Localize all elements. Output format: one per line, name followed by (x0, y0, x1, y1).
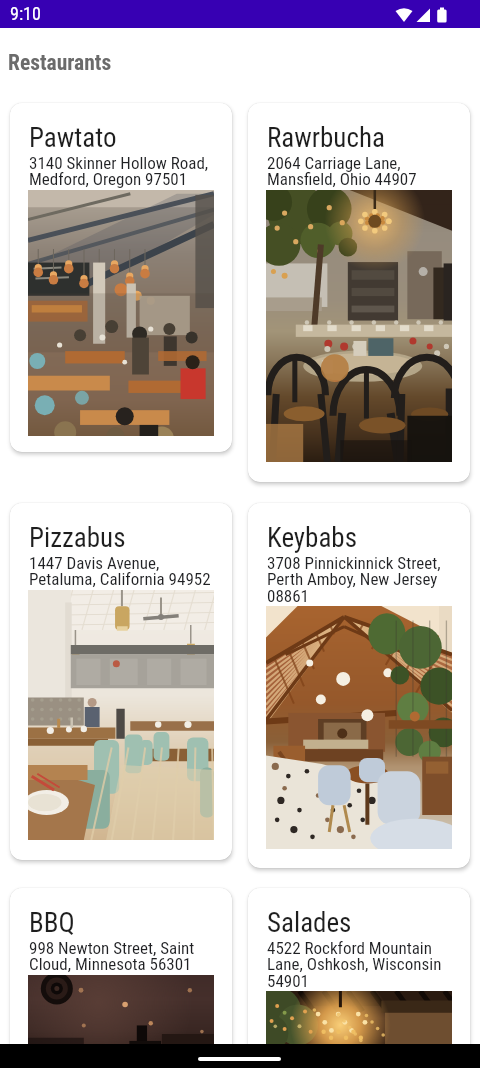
staticText: Rawrbucha (267, 122, 385, 154)
staticText: Pizzabus (29, 522, 126, 554)
button[interactable]: BBQ (10, 888, 232, 1068)
staticText: Keybabs (267, 522, 357, 554)
staticText: 9:10 (10, 3, 41, 24)
staticText: 2064 Carriage Lane, Mansfield, Ohio 4490… (267, 153, 417, 190)
button[interactable]: Keybabs (248, 503, 470, 868)
button[interactable]: Salades (248, 888, 470, 1068)
staticText: 1447 Davis Avenue, Petaluma, California … (29, 553, 211, 590)
button[interactable]: Pizzabus (10, 503, 232, 860)
staticText: Salades (267, 907, 352, 939)
staticText: 4522 Rockford Mountain Lane, Oshkosh, Wi… (267, 938, 442, 992)
button[interactable]: Pawtato (10, 103, 232, 452)
staticText: Pawtato (29, 122, 117, 154)
staticText: 998 Newton Street, Saint Cloud, Minnesot… (29, 938, 195, 975)
staticText: Restaurants (8, 50, 112, 75)
staticText: BBQ (29, 907, 75, 939)
staticText: 3708 Pinnickinnick Street, Perth Amboy, … (267, 553, 441, 607)
button[interactable]: Rawrbucha (248, 103, 470, 482)
staticText: 3140 Skinner Hollow Road, Medford, Orego… (29, 153, 209, 190)
